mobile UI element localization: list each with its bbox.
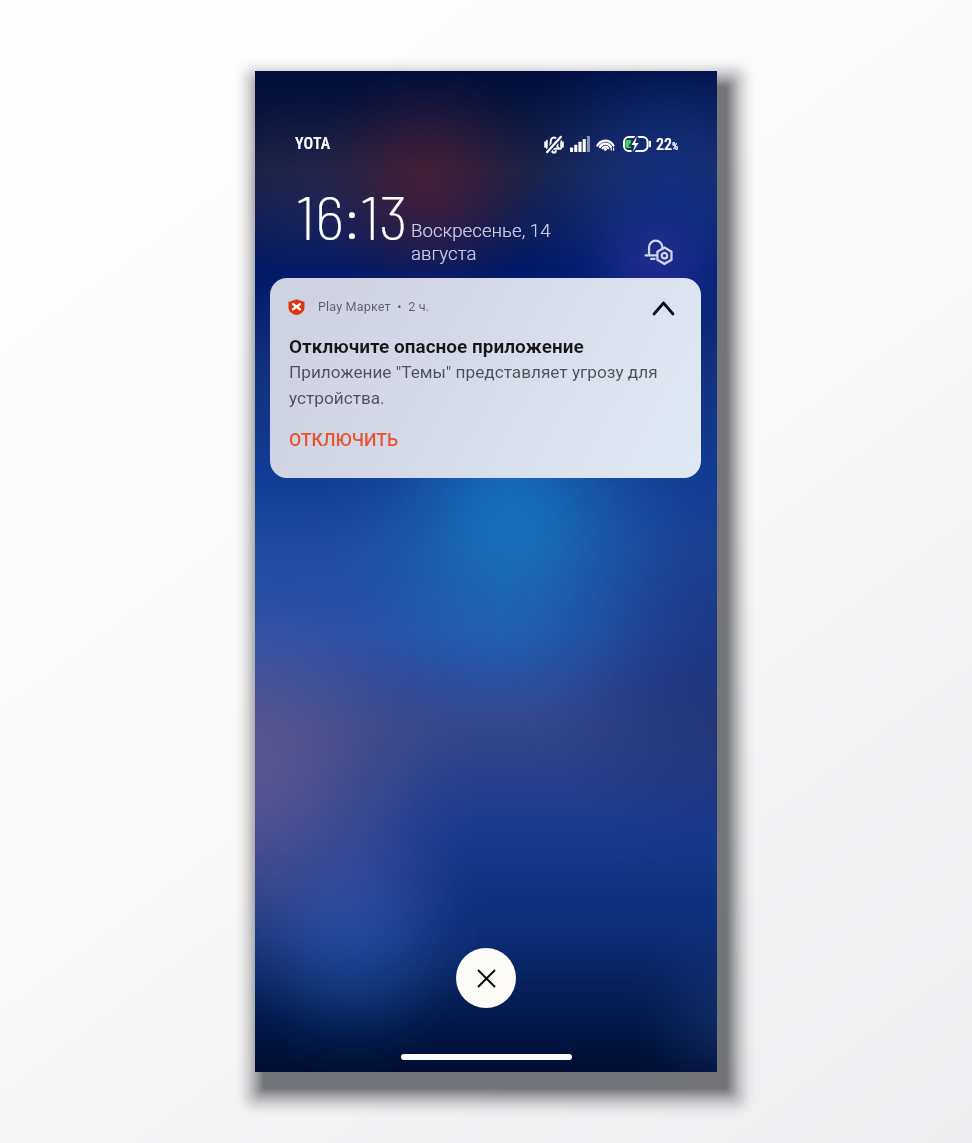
staticText: ОТКЛЮЧИТЬ bbox=[289, 430, 399, 451]
button[interactable]: Close bbox=[456, 948, 516, 1008]
staticText: 22 bbox=[656, 135, 672, 154]
button[interactable]: Notification settings bbox=[639, 230, 679, 270]
staticText: % bbox=[672, 141, 679, 153]
staticText: YOTA bbox=[295, 134, 331, 153]
staticText: 16:13 bbox=[296, 179, 408, 252]
staticText: Приложение "Темы" представляет угрозу дл… bbox=[289, 362, 665, 408]
staticText: Отключите опасное приложение bbox=[289, 335, 584, 357]
button[interactable]: ОТКЛЮЧИТЬ bbox=[289, 430, 399, 451]
button[interactable]: Collapse notification bbox=[641, 286, 685, 330]
staticText: Play Маркет • 2 ч. bbox=[318, 299, 430, 314]
staticText: Воскресенье, 14 августа bbox=[411, 220, 553, 265]
button[interactable]: Play Маркет • 2 ч. bbox=[270, 278, 701, 478]
